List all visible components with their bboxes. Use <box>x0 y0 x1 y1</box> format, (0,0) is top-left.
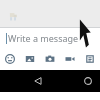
button[interactable]: Video <box>64 48 76 70</box>
button[interactable]: Home <box>81 70 95 92</box>
button[interactable]: Gallery <box>24 48 36 70</box>
button[interactable]: More <box>84 48 96 70</box>
button[interactable]: Camera <box>44 48 56 70</box>
button[interactable]: Emoji <box>4 48 16 70</box>
button[interactable]: Back <box>31 70 45 92</box>
staticText: Write a message <box>8 32 79 44</box>
button[interactable]: Write a message <box>0 28 100 48</box>
